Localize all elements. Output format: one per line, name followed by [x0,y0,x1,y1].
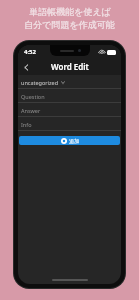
staticText: Answer [21,107,41,114]
button[interactable]: uncategorized [18,75,121,89]
staticText: Word Edit [51,61,89,72]
staticText: 4:52 [24,48,36,56]
button[interactable]: Answer [18,103,121,117]
staticText: 単語帳機能を使えば [29,6,111,17]
staticText: Info [21,121,32,128]
button[interactable]: 追加 [19,136,120,145]
button[interactable]: Info [18,117,121,131]
staticText: 追加 [69,138,79,144]
staticText: Question [21,93,45,100]
button[interactable]: Question [18,89,121,103]
button[interactable]: Back [18,59,34,75]
staticText: 自分で問題を作成可能 [24,19,115,30]
staticText: uncategorized [21,79,59,86]
